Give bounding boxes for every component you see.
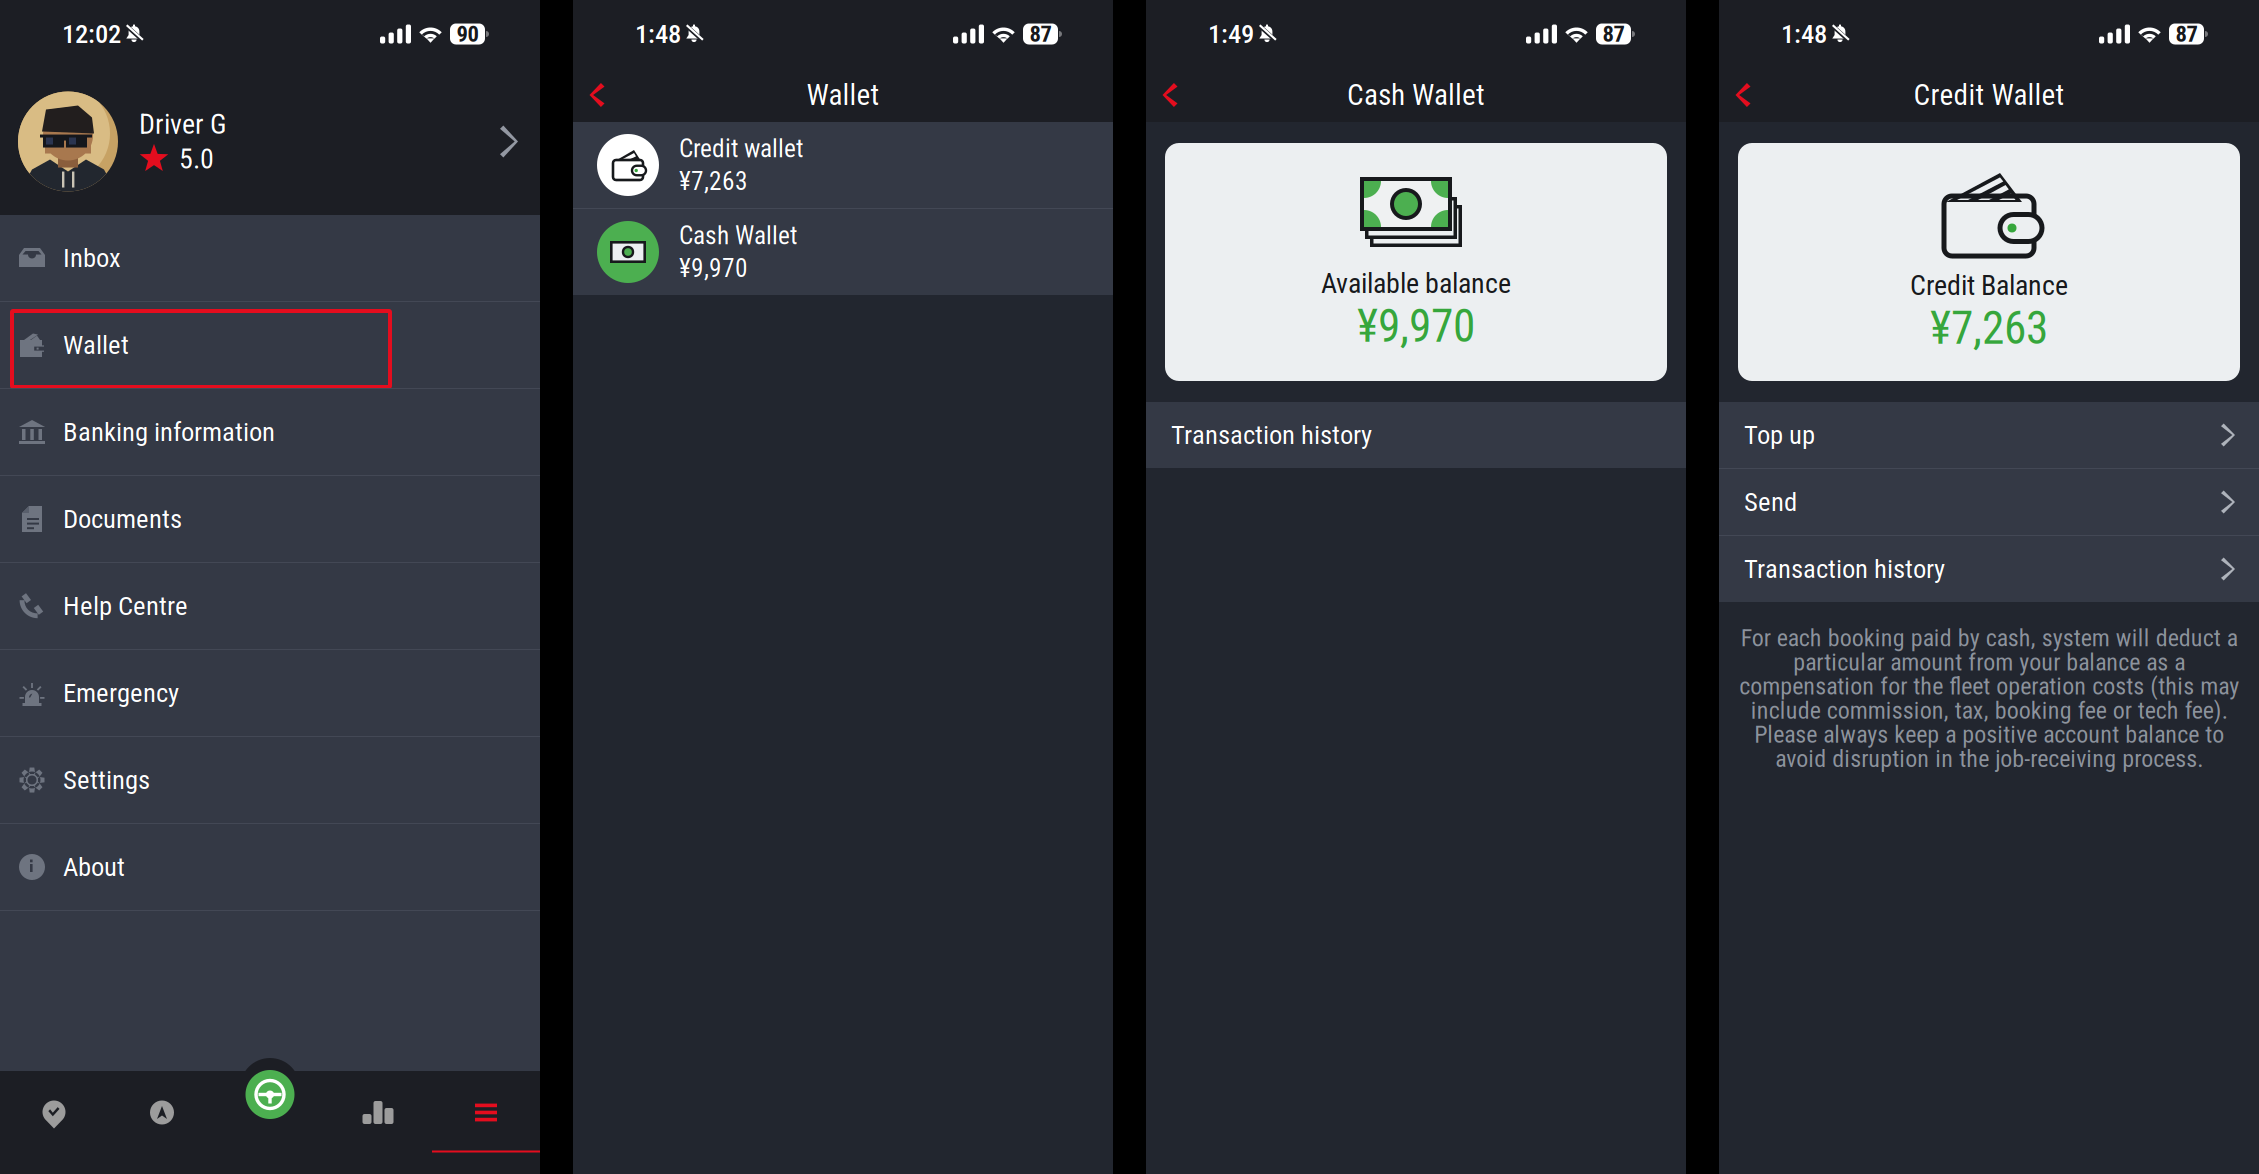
staticText: Cash Wallet (1347, 78, 1485, 112)
button[interactable]: Inbox (0, 215, 540, 301)
staticText: Send (1744, 486, 1797, 518)
staticText: 5.0 (179, 142, 214, 175)
staticText: Credit Wallet (1913, 78, 2064, 112)
button[interactable]: Credit wallet (573, 122, 1113, 208)
staticText: 87 (2175, 21, 2197, 47)
staticText: Settings (63, 764, 150, 796)
button[interactable]: Settings (0, 737, 540, 823)
staticText: For each booking paid by cash, system wi… (1739, 624, 2239, 773)
button[interactable]: About (0, 824, 540, 910)
button[interactable]: Send (1719, 469, 2259, 535)
button[interactable]: Transaction history (1146, 402, 1686, 468)
staticText: ¥9,970 (1357, 300, 1475, 353)
staticText: 87 (1029, 21, 1051, 47)
button[interactable]: Wallet (0, 302, 540, 388)
button[interactable]: Drive (216, 1071, 324, 1174)
staticText: ¥7,263 (679, 166, 748, 196)
staticText: Inbox (63, 242, 121, 274)
button[interactable]: Transaction history (1719, 536, 2259, 602)
button[interactable]: Drive (245, 1070, 294, 1119)
staticText: 1:48 (635, 18, 681, 50)
staticText: Driver G (139, 108, 227, 140)
staticText: 1:49 (1208, 18, 1254, 50)
button[interactable]: Statistics (324, 1071, 432, 1174)
staticText: Wallet (63, 329, 129, 361)
button[interactable]: Top up (1719, 402, 2259, 468)
button[interactable]: Help Centre (0, 563, 540, 649)
staticText: 12:02 (62, 18, 121, 50)
staticText: 87 (1602, 21, 1624, 47)
staticText: ¥9,970 (679, 253, 748, 283)
staticText: Emergency (63, 677, 179, 709)
staticText: Credit Balance (1910, 269, 2068, 302)
staticText: 1:48 (1781, 18, 1827, 50)
staticText: Available balance (1321, 267, 1511, 300)
button[interactable]: Cash Wallet (573, 209, 1113, 295)
staticText: Transaction history (1171, 419, 1372, 451)
staticText: Transaction history (1744, 553, 1945, 585)
button[interactable]: Documents (0, 476, 540, 562)
staticText: Help Centre (63, 590, 188, 622)
staticText: Credit wallet (679, 134, 803, 163)
button[interactable]: Back (1721, 68, 1765, 122)
staticText: Top up (1744, 419, 1815, 451)
button[interactable]: Banking information (0, 389, 540, 475)
staticText: Documents (63, 503, 182, 535)
button[interactable]: Navigate (108, 1071, 216, 1174)
staticText: Banking information (63, 416, 275, 448)
button[interactable]: Back (575, 68, 619, 122)
staticText: Cash Wallet (679, 221, 797, 250)
button[interactable]: Back (1148, 68, 1192, 122)
button[interactable]: Driver G (0, 68, 540, 215)
button[interactable]: Jobs (0, 1071, 108, 1174)
staticText: ¥7,263 (1930, 302, 2048, 355)
staticText: 90 (456, 21, 478, 47)
button[interactable]: Menu (432, 1071, 540, 1174)
staticText: About (63, 851, 125, 883)
button[interactable]: Emergency (0, 650, 540, 736)
staticText: Wallet (806, 78, 879, 112)
